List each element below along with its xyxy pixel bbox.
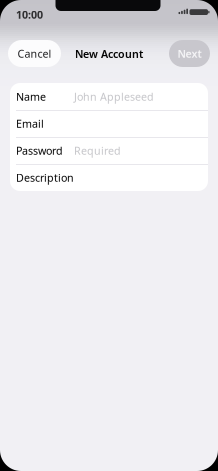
staticText: Description — [16, 170, 74, 185]
button[interactable]: Description — [10, 164, 208, 191]
staticText: Cancel — [17, 46, 51, 61]
staticText: Required — [74, 143, 121, 158]
staticText: Next — [177, 46, 201, 61]
staticText: 10:00 — [16, 7, 43, 22]
staticText: Name — [16, 89, 46, 104]
staticText: Email — [16, 116, 44, 131]
button[interactable]: Cancel — [8, 40, 61, 67]
button[interactable]: Next — [169, 40, 210, 67]
button[interactable]: Email — [10, 110, 208, 137]
staticText: Password — [16, 143, 63, 158]
staticText: New Account — [75, 47, 143, 61]
button[interactable]: Password — [10, 137, 208, 164]
button[interactable]: Name — [10, 83, 208, 110]
staticText: John Appleseed — [74, 89, 154, 104]
